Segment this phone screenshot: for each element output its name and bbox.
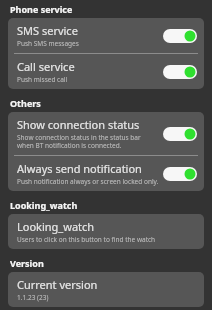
button[interactable]: Toggle switch, on bbox=[163, 167, 197, 181]
button[interactable]: Toggle switch, on bbox=[163, 65, 197, 79]
button[interactable]: Call service bbox=[8, 54, 204, 89]
button[interactable]: Toggle switch, on bbox=[163, 29, 197, 43]
staticText: Show connection status bbox=[17, 117, 140, 132]
staticText: Show connection status in the status bar… bbox=[17, 133, 159, 150]
staticText: Current version bbox=[17, 277, 98, 292]
staticText: Push missed call bbox=[17, 75, 68, 84]
staticText: Push notification always or screen locke… bbox=[17, 177, 159, 186]
button[interactable]: Always send notification bbox=[8, 156, 204, 191]
staticText: Version bbox=[10, 257, 44, 269]
button[interactable]: Toggle switch, on bbox=[163, 127, 197, 141]
staticText: SMS service bbox=[17, 23, 78, 38]
button[interactable]: Current version bbox=[8, 272, 204, 307]
staticText: 1.1.23 (23) bbox=[17, 293, 49, 302]
staticText: Looking_watch bbox=[10, 199, 78, 211]
staticText: Always send notification bbox=[17, 161, 142, 176]
button[interactable]: Looking_watch bbox=[8, 214, 204, 249]
button[interactable]: SMS service bbox=[8, 18, 204, 53]
staticText: Call service bbox=[17, 59, 75, 74]
staticText: Push SMS messages bbox=[17, 39, 79, 48]
staticText: Phone service bbox=[10, 3, 73, 15]
button[interactable]: Show connection status bbox=[8, 112, 204, 155]
staticText: Users to click on this button to find th… bbox=[17, 235, 156, 244]
staticText: Looking_watch bbox=[17, 219, 95, 234]
staticText: Others bbox=[10, 97, 41, 109]
